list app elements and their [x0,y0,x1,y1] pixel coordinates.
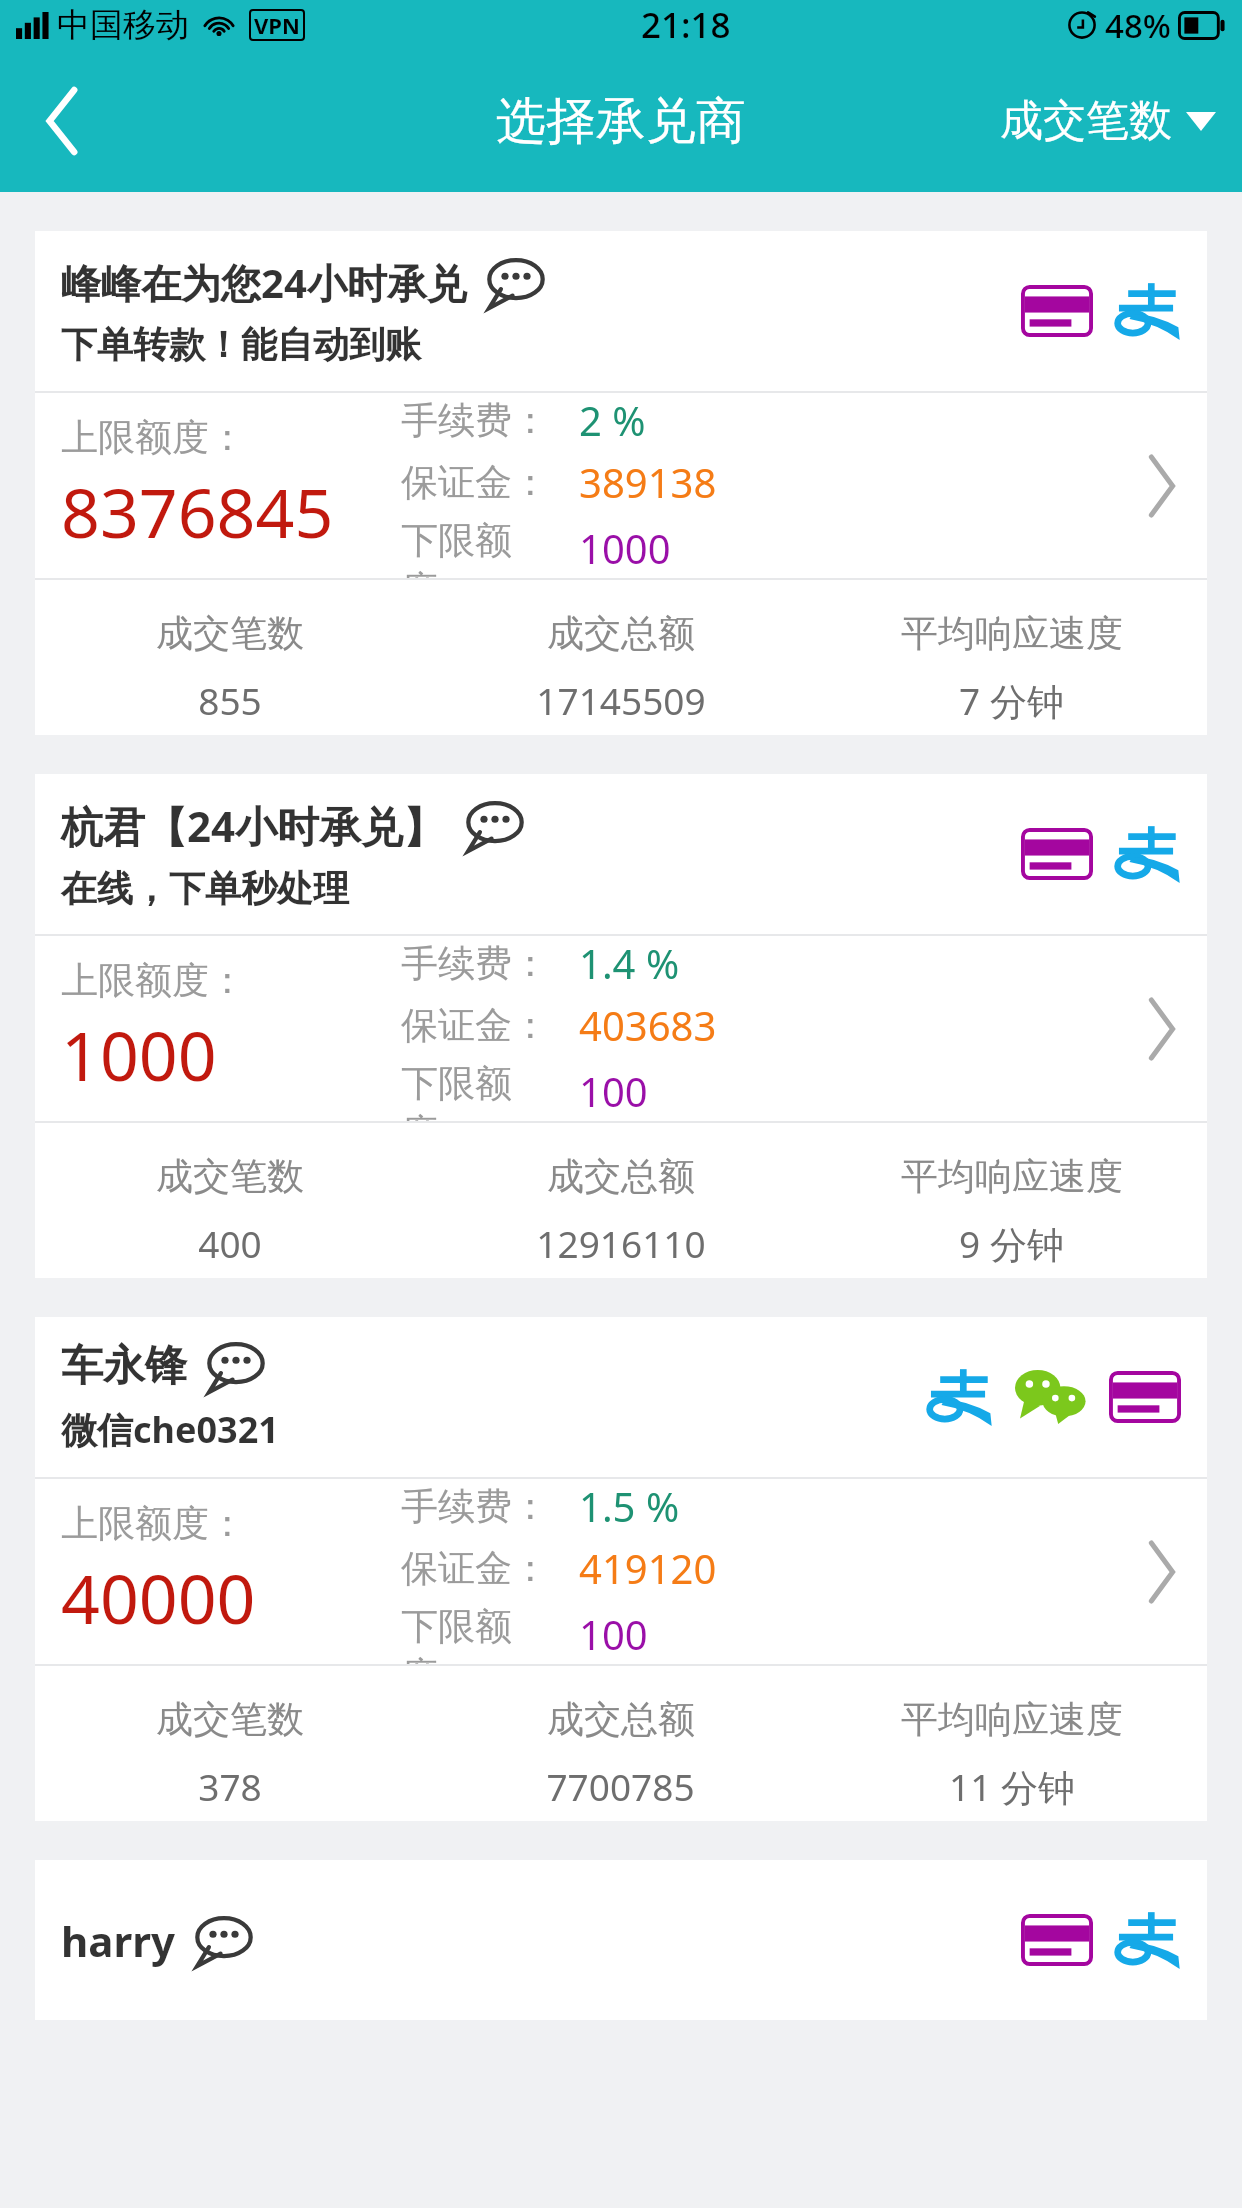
staticText: 上限额度： [61,414,246,461]
staticText: 389138 [579,455,717,509]
staticText: VPN [254,10,300,40]
staticText: 选择承兑商 [496,90,746,153]
staticText: 平均响应速度 [901,1696,1123,1743]
staticText: 上限额度： [61,957,246,1004]
staticText: 微信che0321 [61,1405,279,1454]
staticText: 手续费： [401,940,549,987]
staticText: 成交总额 [547,610,695,657]
staticText: 9 分钟 [959,1218,1064,1269]
staticText: 855 [198,675,262,725]
staticText: 7 分钟 [959,675,1064,726]
staticText: 成交总额 [547,1696,695,1743]
staticText: 1.4 % [579,936,680,990]
staticText: 403683 [579,998,717,1052]
staticText: 1000 [579,521,671,575]
staticText: 40000 [61,1551,256,1644]
staticText: 1000 [61,1008,217,1101]
button[interactable]: 成交笔数 [992,80,1224,162]
staticText: 21:18 [641,1,731,49]
staticText: 48% [1105,3,1171,48]
button[interactable]: 杭君【24小时承兑】 [35,774,1207,1278]
staticText: 上限额度： [61,1500,246,1547]
staticText: 1.5 % [579,1479,680,1533]
staticText: 8376845 [61,465,334,558]
staticText: 100 [579,1607,648,1661]
staticText: 2 % [579,393,646,447]
staticText: 中国移动 [57,4,189,46]
staticText: 下限额度： [401,517,579,578]
staticText: 下限额度： [401,1603,579,1664]
staticText: 保证金： [401,459,549,506]
staticText: 12916110 [536,1218,706,1268]
staticText: 峰峰在为您24小时承兑 [61,255,467,310]
button[interactable]: Back [8,66,118,176]
staticText: 在线，下单秒处理 [61,866,349,911]
staticText: 419120 [579,1541,717,1595]
staticText: 保证金： [401,1002,549,1049]
staticText: 100 [579,1064,648,1118]
staticText: 下单转款！能自动到账 [61,322,421,367]
staticText: 7700785 [546,1761,695,1811]
staticText: 手续费： [401,397,549,444]
staticText: 成交笔数 [1000,94,1172,148]
staticText: 成交笔数 [156,1696,304,1743]
staticText: 11 分钟 [949,1761,1075,1812]
staticText: 手续费： [401,1483,549,1530]
staticText: harry [61,1912,175,1969]
button[interactable]: harry [35,1860,1207,2020]
staticText: 杭君【24小时承兑】 [61,797,446,854]
staticText: 17145509 [536,675,706,725]
staticText: 成交总额 [547,1153,695,1200]
staticText: 400 [198,1218,262,1268]
staticText: 保证金： [401,1545,549,1592]
staticText: 成交笔数 [156,1153,304,1200]
button[interactable]: 峰峰在为您24小时承兑 [35,231,1207,735]
button[interactable]: 车永锋 [35,1317,1207,1821]
staticText: 成交笔数 [156,610,304,657]
staticText: 下限额度： [401,1060,579,1121]
staticText: 车永锋 [61,1340,187,1393]
staticText: 378 [198,1761,262,1811]
staticText: 平均响应速度 [901,610,1123,657]
staticText: 平均响应速度 [901,1153,1123,1200]
